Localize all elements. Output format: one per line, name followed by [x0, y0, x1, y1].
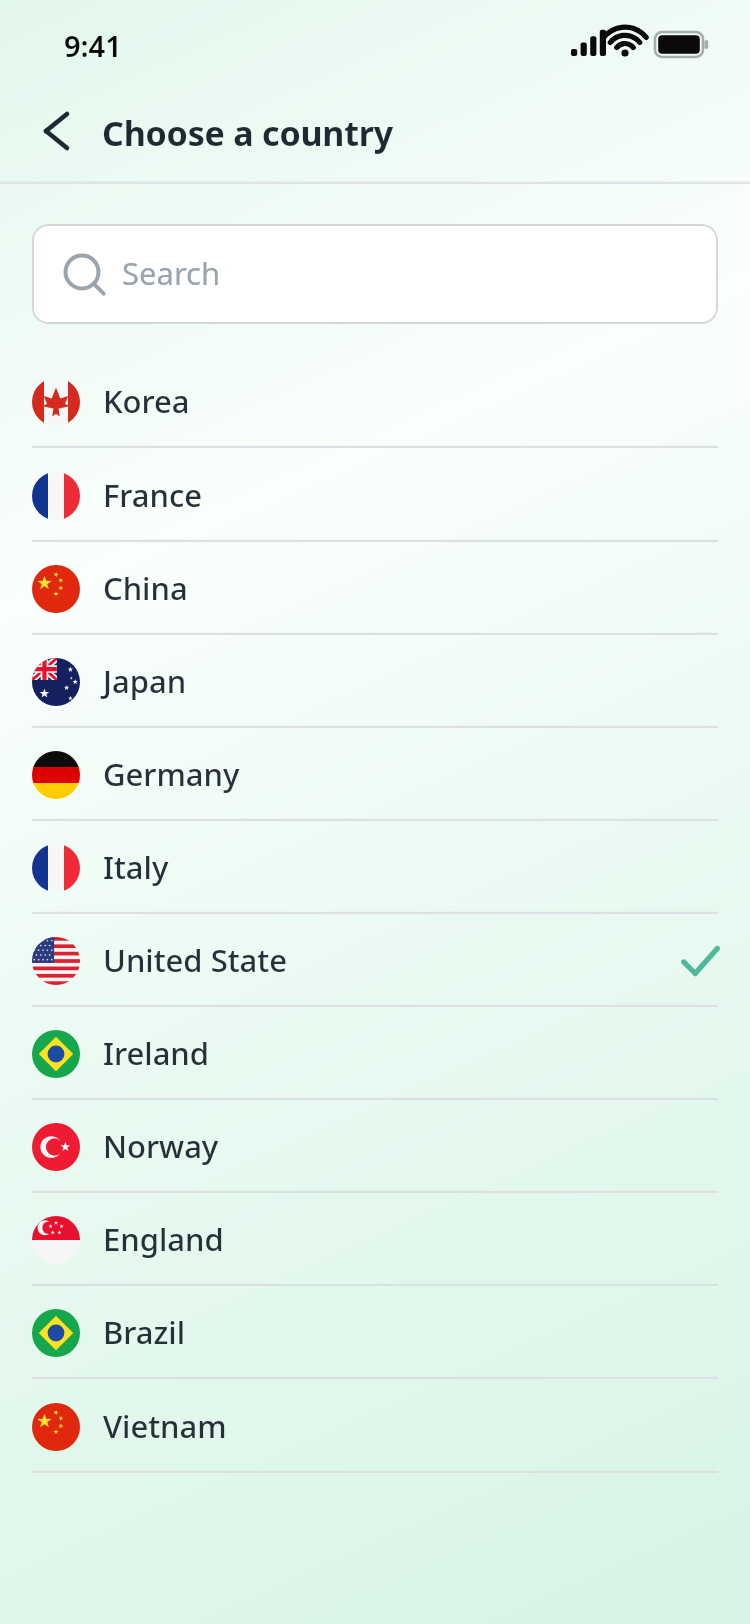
button[interactable]: France — [0, 449, 750, 542]
button[interactable]: Norway — [0, 1100, 750, 1193]
button[interactable]: Brazil — [0, 1286, 750, 1379]
button[interactable]: China — [0, 542, 750, 635]
staticText: Vietnam — [103, 1405, 227, 1447]
staticText: Brazil — [103, 1311, 186, 1353]
button[interactable]: England — [0, 1193, 750, 1286]
button[interactable]: Korea — [0, 355, 750, 448]
staticText: Search — [122, 252, 221, 294]
button[interactable]: Germany — [0, 728, 750, 821]
staticText: France — [103, 474, 203, 516]
button[interactable]: Ireland — [0, 1007, 750, 1100]
staticText: China — [103, 567, 188, 609]
staticText: United State — [103, 939, 287, 981]
staticText: Ireland — [103, 1032, 210, 1074]
button[interactable]: Italy — [0, 821, 750, 914]
button[interactable]: Japan — [0, 635, 750, 728]
staticText: Korea — [103, 380, 190, 422]
staticText: Japan — [103, 660, 187, 702]
staticText: Norway — [103, 1125, 219, 1167]
button[interactable]: Back — [26, 101, 86, 161]
staticText: Germany — [103, 753, 240, 795]
staticText: England — [103, 1218, 224, 1260]
staticText: 9:41 — [64, 26, 122, 65]
button[interactable]: Search — [32, 224, 718, 324]
staticText: Choose a country — [102, 110, 394, 156]
button[interactable]: United State — [0, 914, 750, 1007]
button[interactable]: Vietnam — [0, 1380, 750, 1473]
staticText: Italy — [103, 846, 169, 888]
